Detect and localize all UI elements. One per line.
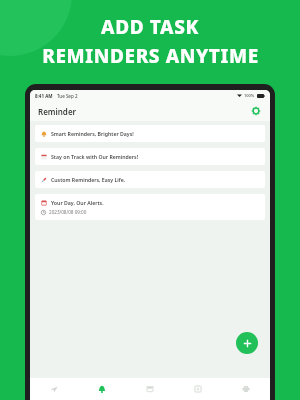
button[interactable]: Send [30,378,78,400]
staticText: 100% [244,93,255,98]
button[interactable]: Smart Reminders, Brighter Days! [35,125,265,142]
staticText: 8:41 AM [35,93,53,99]
staticText: ADD TASK [101,14,199,40]
button[interactable]: Settings [250,105,262,117]
staticText: Custom Reminders, Easy Life. [51,176,126,183]
button[interactable]: Stay on Track with Our Reminders! [35,148,265,165]
button[interactable]: Custom Reminders, Easy Life. [35,171,265,188]
staticText: Reminder [38,106,77,117]
button[interactable]: Reminders [78,378,126,400]
button[interactable]: Print [222,378,270,400]
staticText: Stay on Track with Our Reminders! [51,153,139,160]
button[interactable]: Add reminder [236,332,258,354]
button[interactable]: Your Day, Our Alerts. [35,194,265,220]
staticText: Tue Sep 2 [57,93,78,99]
staticText: REMINDERS ANYTIME [42,43,259,69]
staticText: Your Day, Our Alerts. [51,199,104,206]
staticText: 2023/08/08 09:00 [49,209,87,215]
staticText: Smart Reminders, Brighter Days! [51,130,134,137]
button[interactable]: Save [174,378,222,400]
button[interactable]: Archive [126,378,174,400]
